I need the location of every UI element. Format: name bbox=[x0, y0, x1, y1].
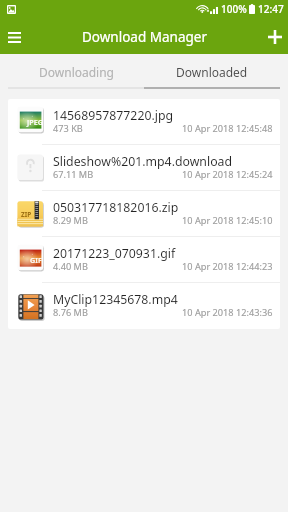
staticText: Download Manager bbox=[82, 28, 207, 46]
staticText: 8.29 MB bbox=[53, 214, 88, 227]
staticText: 10 Apr 2018 12:44:23 bbox=[182, 260, 273, 273]
staticText: GIF bbox=[30, 255, 42, 265]
button[interactable]: Downloading bbox=[8, 54, 144, 89]
staticText: 12:47 bbox=[258, 2, 284, 16]
staticText: Slideshow%201.mp4.download bbox=[53, 153, 233, 170]
staticText: 473 KB bbox=[53, 122, 83, 135]
staticText: Downloading bbox=[39, 64, 114, 80]
staticText: MyClip12345678.mp4 bbox=[53, 291, 178, 308]
staticText: 10 Apr 2018 12:45:10 bbox=[182, 214, 273, 227]
button[interactable]: GIF bbox=[8, 237, 280, 282]
staticText: 20171223_070931.gif bbox=[53, 245, 176, 262]
staticText: 10 Apr 2018 12:45:48 bbox=[182, 122, 273, 135]
staticText: 100% bbox=[221, 2, 247, 16]
button[interactable]: Slideshow%201.mp4.download bbox=[8, 145, 280, 190]
staticText: Downloaded bbox=[176, 64, 248, 80]
button[interactable]: Add download bbox=[261, 19, 288, 55]
staticText: 8.76 MB bbox=[53, 306, 88, 319]
staticText: 4.40 MB bbox=[53, 260, 88, 273]
staticText: JPEG bbox=[27, 117, 43, 127]
button[interactable]: JPEG bbox=[8, 99, 280, 144]
staticText: 050317718182016.zip bbox=[53, 199, 179, 216]
staticText: ZIP bbox=[21, 210, 32, 219]
staticText: 14568957877220.jpg bbox=[53, 107, 174, 124]
button[interactable]: Open navigation menu bbox=[0, 19, 28, 55]
button[interactable]: Downloaded bbox=[144, 54, 280, 89]
button[interactable]: ZIP bbox=[8, 191, 280, 236]
button[interactable]: MyClip12345678.mp4 bbox=[8, 283, 280, 329]
staticText: 10 Apr 2018 12:43:36 bbox=[182, 306, 273, 319]
staticText: 67.11 MB bbox=[53, 168, 94, 181]
staticText: 10 Apr 2018 12:45:24 bbox=[182, 168, 273, 181]
